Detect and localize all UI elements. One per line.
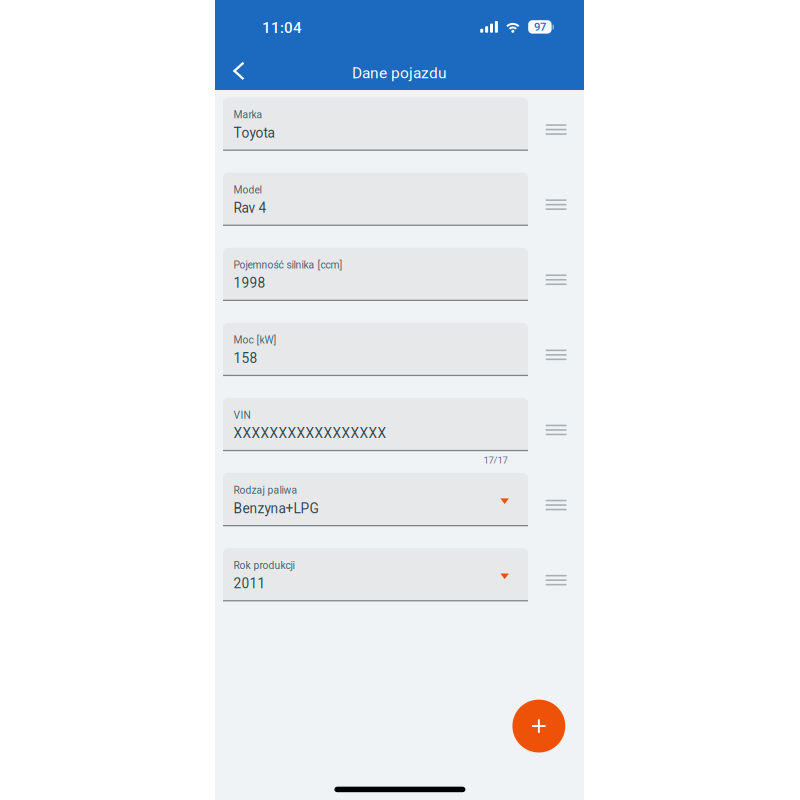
button[interactable]: Rok produkcji	[223, 548, 584, 602]
button[interactable]: Pojemność silnika [ccm]	[223, 248, 584, 302]
button[interactable]: VIN	[223, 398, 584, 452]
staticText: 2011	[233, 575, 265, 592]
staticText: Rodzaj paliwa	[233, 484, 297, 496]
staticText: 158	[233, 350, 257, 366]
staticText: 11:04	[262, 19, 302, 37]
staticText: XXXXXXXXXXXXXXXXX	[233, 425, 386, 441]
button[interactable]: Moc [kW]	[223, 323, 584, 377]
staticText: 17/17	[483, 455, 507, 466]
staticText: 1998	[233, 275, 265, 291]
staticText: Dane pojazdu	[352, 64, 447, 82]
staticText: Toyota	[233, 125, 274, 141]
staticText: 97	[534, 20, 546, 33]
button[interactable]: Back	[219, 52, 259, 90]
button[interactable]: Rodzaj paliwa	[223, 473, 584, 527]
staticText: Marka	[233, 109, 262, 121]
button[interactable]: Add	[512, 700, 565, 752]
staticText: Model	[233, 184, 261, 196]
staticText: Pojemność silnika [ccm]	[233, 259, 342, 271]
staticText: VIN	[233, 409, 250, 421]
staticText: Benzyna+LPG	[233, 500, 318, 516]
staticText: Moc [kW]	[233, 334, 276, 346]
button[interactable]: Model	[223, 173, 584, 227]
staticText: Rav 4	[233, 200, 266, 216]
staticText: Rok produkcji	[233, 559, 294, 571]
button[interactable]: Marka	[223, 97, 584, 151]
